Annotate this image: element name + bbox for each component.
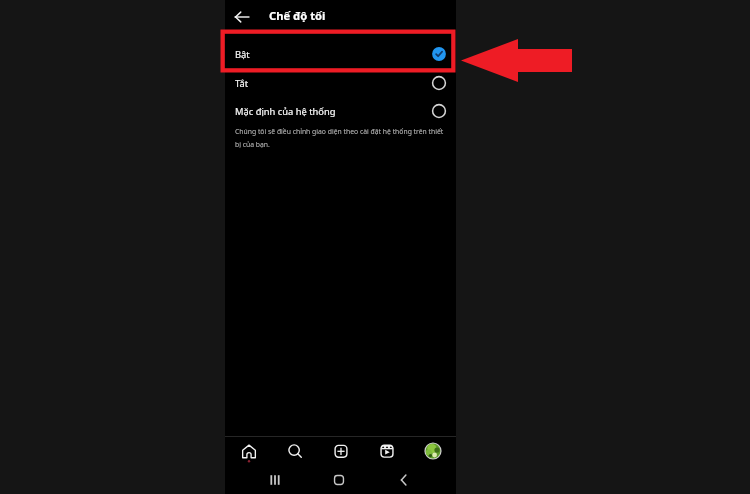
staticText: Chúng tôi sẽ điều chỉnh giao diện theo c…: [235, 127, 459, 149]
button[interactable]: Reels: [364, 437, 410, 464]
staticText: Mặc định của hệ thống: [235, 105, 431, 118]
button[interactable]: Back: [232, 7, 252, 27]
staticText: Tắt: [235, 77, 431, 90]
button[interactable]: Tắt: [225, 69, 456, 97]
button[interactable]: Bật: [225, 40, 456, 68]
button[interactable]: Home: [323, 466, 355, 494]
staticText: Bật: [235, 48, 431, 61]
button[interactable]: Create: [318, 437, 364, 464]
button[interactable]: Mặc định của hệ thống: [225, 97, 456, 125]
button[interactable]: Profile: [410, 437, 456, 464]
staticText: Chế độ tối: [269, 8, 326, 23]
button[interactable]: Recent apps: [259, 466, 291, 494]
button[interactable]: Back: [388, 466, 420, 494]
button[interactable]: Home: [225, 437, 272, 464]
button[interactable]: Search: [272, 437, 318, 464]
